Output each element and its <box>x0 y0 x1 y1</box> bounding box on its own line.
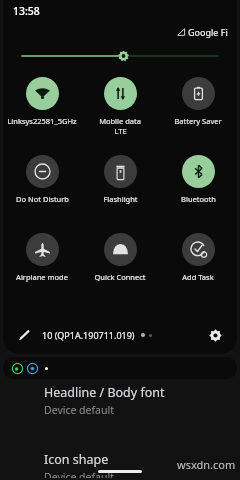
staticText: Device default <box>44 470 114 478</box>
button[interactable]: Battery Saver <box>159 74 237 152</box>
staticText: Battery Saver <box>174 116 222 126</box>
button[interactable]: Airplane mode <box>3 230 81 308</box>
staticText: Do Not Disturb <box>16 194 69 204</box>
staticText: wsxdn.com <box>177 457 236 472</box>
staticText: Device default <box>44 403 114 417</box>
button[interactable]: Bluetooth <box>159 152 237 230</box>
staticText: Linksys22581_5GHz <box>7 116 77 126</box>
button[interactable]: Flashlight <box>81 152 159 230</box>
staticText: Icon shape <box>44 451 109 468</box>
staticText: Mobile data <box>99 116 141 126</box>
button[interactable]: Do Not Disturb <box>3 152 81 230</box>
staticText: Flashlight <box>103 194 138 204</box>
staticText: LTE <box>114 126 127 136</box>
staticText: Airplane mode <box>16 272 68 282</box>
staticText: 13:58 <box>13 4 40 18</box>
button[interactable]: Settings <box>204 324 226 346</box>
button[interactable]: Headline / Body font <box>0 382 240 419</box>
staticText: Google Fi <box>188 26 228 38</box>
button[interactable]: Quick Connect <box>81 230 159 308</box>
button[interactable]: Edit tiles <box>14 325 34 345</box>
staticText: Quick Connect <box>94 272 146 282</box>
button[interactable]: Linksys22581_5GHz <box>3 74 81 152</box>
button[interactable]: Brightness <box>3 42 237 70</box>
staticText: Bluetooth <box>181 194 216 204</box>
staticText: Add Task <box>182 272 214 282</box>
button[interactable]: Add Task <box>159 230 237 308</box>
button[interactable]: Icon shape <box>0 449 240 480</box>
button[interactable]: Mobile data <box>81 74 159 152</box>
staticText: Headline / Body font <box>44 384 165 401</box>
staticText: 10 (QP1A.190711.019) <box>42 329 135 341</box>
